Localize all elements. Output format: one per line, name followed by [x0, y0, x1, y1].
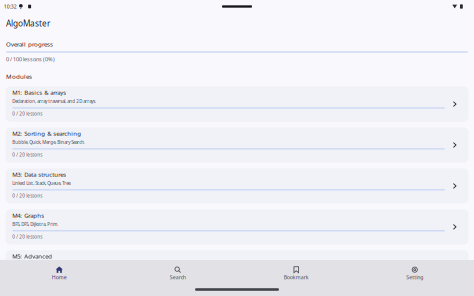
button[interactable]: Search [118, 266, 237, 281]
staticText: M2: Sorting & searching [12, 129, 81, 137]
staticText: 0 / 20 lessons [12, 111, 42, 117]
button[interactable]: M1: Basics & arrays [5, 86, 468, 122]
staticText: Bubble, Quick, Merge, Binary Search. [12, 139, 85, 145]
staticText: M4: Graphs [12, 211, 44, 219]
staticText: 0 / 100 lessons (0%) [6, 55, 55, 63]
button[interactable]: Setting [355, 266, 474, 281]
staticText: 0 / 20 lessons [12, 193, 42, 199]
staticText: Setting [406, 274, 423, 281]
staticText: M3: Data structures [12, 170, 66, 178]
button[interactable]: M3: Data structures [5, 168, 468, 204]
staticText: Modules [6, 72, 32, 81]
button[interactable]: Home [0, 266, 118, 281]
staticText: Overall progress [6, 40, 53, 48]
button[interactable]: M5: Advanced [5, 250, 468, 285]
staticText: BFS, DFS, Dijkstra, Prim. [12, 221, 58, 227]
button[interactable]: M2: Sorting & searching [5, 127, 468, 163]
staticText: Declaration, array traversal, and 2D arr… [12, 98, 96, 104]
staticText: Bookmark [284, 274, 309, 281]
staticText: Home [52, 274, 67, 281]
staticText: M1: Basics & arrays [12, 88, 66, 97]
staticText: Linked List, Stack, Queue, Tree. [12, 180, 71, 186]
staticText: 0 / 20 lessons [12, 234, 42, 240]
staticText: M5: Advanced [12, 252, 52, 260]
staticText: DP, Greedy, Backtracking. [12, 262, 62, 268]
button[interactable]: M4: Graphs [5, 209, 468, 244]
staticText: AlgoMaster [6, 18, 50, 29]
staticText: 10:32 [4, 3, 17, 10]
staticText: Search [170, 274, 186, 281]
button[interactable]: Bookmark [237, 266, 355, 281]
staticText: 0 / 20 lessons [12, 152, 42, 158]
